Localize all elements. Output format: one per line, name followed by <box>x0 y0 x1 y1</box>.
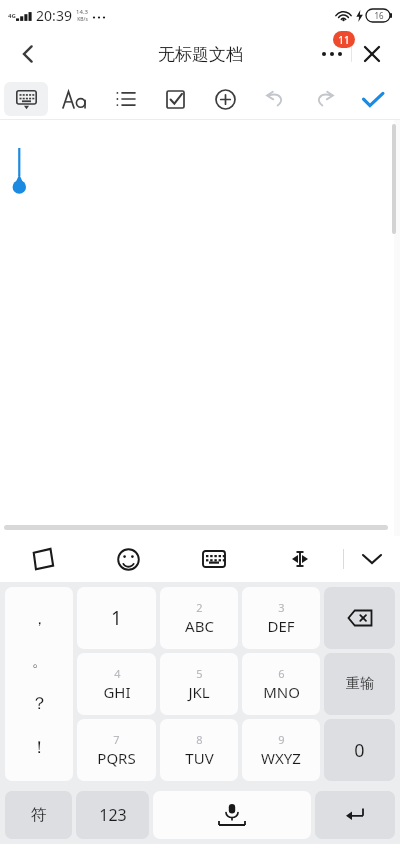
button[interactable]: Keyboard layout <box>171 536 257 582</box>
button[interactable]: 2 <box>160 587 238 649</box>
staticText: 123 <box>99 804 127 826</box>
button[interactable]: 5 <box>160 653 238 715</box>
button[interactable]: 8 <box>160 719 238 781</box>
button[interactable]: Backspace <box>324 587 395 649</box>
button[interactable]: Checklist <box>150 78 200 120</box>
button[interactable]: 4 <box>77 653 156 715</box>
staticText: 9 <box>278 732 285 747</box>
staticText: ， <box>32 610 47 629</box>
staticText: 0 <box>354 738 365 763</box>
staticText: MNO <box>263 682 300 702</box>
button[interactable]: ， <box>5 587 73 781</box>
button[interactable]: 1 <box>77 587 156 649</box>
staticText: 符 <box>31 805 47 825</box>
staticText: 4G <box>8 12 16 20</box>
staticText: 重输 <box>346 675 374 693</box>
staticText: 11 <box>338 33 350 47</box>
button[interactable] <box>0 120 394 536</box>
button[interactable]: Insert <box>200 78 250 120</box>
staticText: 20:39 <box>36 6 72 25</box>
button[interactable]: Redo <box>300 78 350 120</box>
staticText: TUV <box>185 748 214 768</box>
staticText: 2 <box>196 600 203 615</box>
button[interactable]: 9 <box>242 719 320 781</box>
button[interactable]: 重输 <box>324 653 395 715</box>
button[interactable]: Done <box>350 78 396 120</box>
staticText: ？ <box>31 693 48 714</box>
staticText: 6 <box>278 666 285 681</box>
staticText: KB/s <box>77 16 88 23</box>
staticText: ！ <box>31 737 48 758</box>
button[interactable]: 6 <box>242 653 320 715</box>
staticText: 7 <box>113 732 120 747</box>
button[interactable]: Undo <box>250 78 300 120</box>
staticText: 无标题文档 <box>158 44 243 65</box>
staticText: JKL <box>188 682 210 702</box>
button[interactable]: 7 <box>77 719 156 781</box>
button[interactable]: List <box>99 78 150 120</box>
button[interactable]: Hide keyboard <box>344 536 400 582</box>
staticText: 3 <box>278 600 285 615</box>
button[interactable]: Close <box>352 37 392 71</box>
button[interactable]: Sogou input <box>0 536 85 582</box>
staticText: GHI <box>103 682 131 702</box>
staticText: DEF <box>267 616 295 636</box>
staticText: 5 <box>196 666 203 681</box>
staticText: ABC <box>185 616 214 636</box>
button[interactable]: Back <box>6 32 50 76</box>
button[interactable]: More options <box>311 37 351 71</box>
staticText: 16 <box>374 10 384 21</box>
button[interactable]: Emoji <box>85 536 171 582</box>
button[interactable]: 符 <box>5 791 72 839</box>
button[interactable]: Text style <box>48 78 99 120</box>
button[interactable]: Cursor control <box>257 536 343 582</box>
staticText: 4 <box>114 666 121 681</box>
staticText: 8 <box>196 732 203 747</box>
staticText: 1 <box>111 605 122 631</box>
staticText: WXYZ <box>261 748 301 768</box>
staticText: 14.3 <box>76 8 88 16</box>
button[interactable] <box>153 791 311 839</box>
button[interactable]: 0 <box>324 719 395 781</box>
staticText: 。 <box>32 652 47 671</box>
button[interactable] <box>315 791 395 839</box>
button[interactable]: Keyboard <box>4 82 48 116</box>
button[interactable]: 123 <box>76 791 149 839</box>
button[interactable]: 3 <box>242 587 320 649</box>
staticText: PQRS <box>97 748 136 768</box>
